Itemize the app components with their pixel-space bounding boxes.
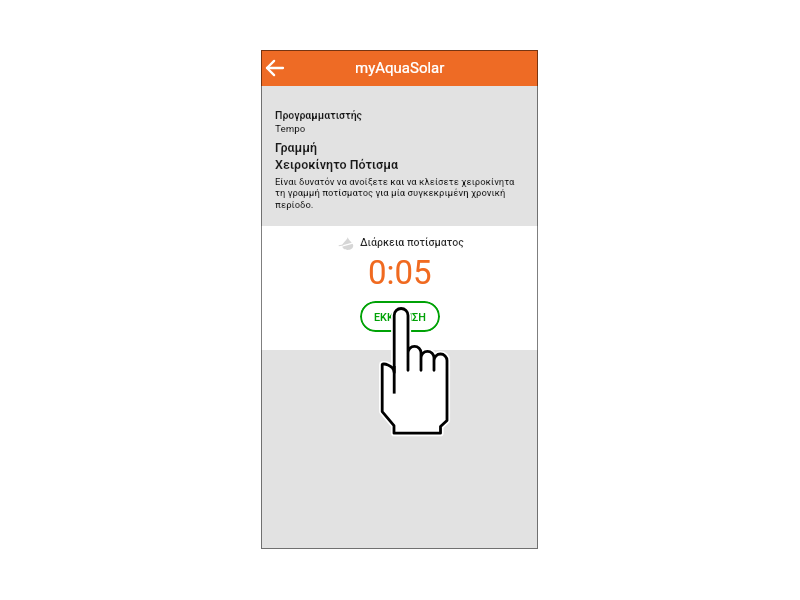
staticText: Διάρκεια ποτίσματος: [360, 236, 464, 248]
staticText: ΕΚΚΙΝΗΣΗ: [374, 311, 426, 324]
staticText: myAquaSolar: [355, 59, 445, 77]
staticText: 0:05: [368, 253, 432, 292]
button[interactable]: ΕΚΚΙΝΗΣΗ: [360, 301, 440, 332]
staticText: Tempo: [275, 123, 306, 134]
staticText: Γραμμή: [275, 140, 317, 155]
staticText: Προγραμματιστής: [275, 109, 362, 121]
button[interactable]: Back: [261, 54, 289, 82]
staticText: Χειροκίνητο Πότισμα: [275, 157, 398, 172]
staticText: Είναι δυνατόν να ανοίξετε και να κλείσετ…: [275, 176, 520, 210]
